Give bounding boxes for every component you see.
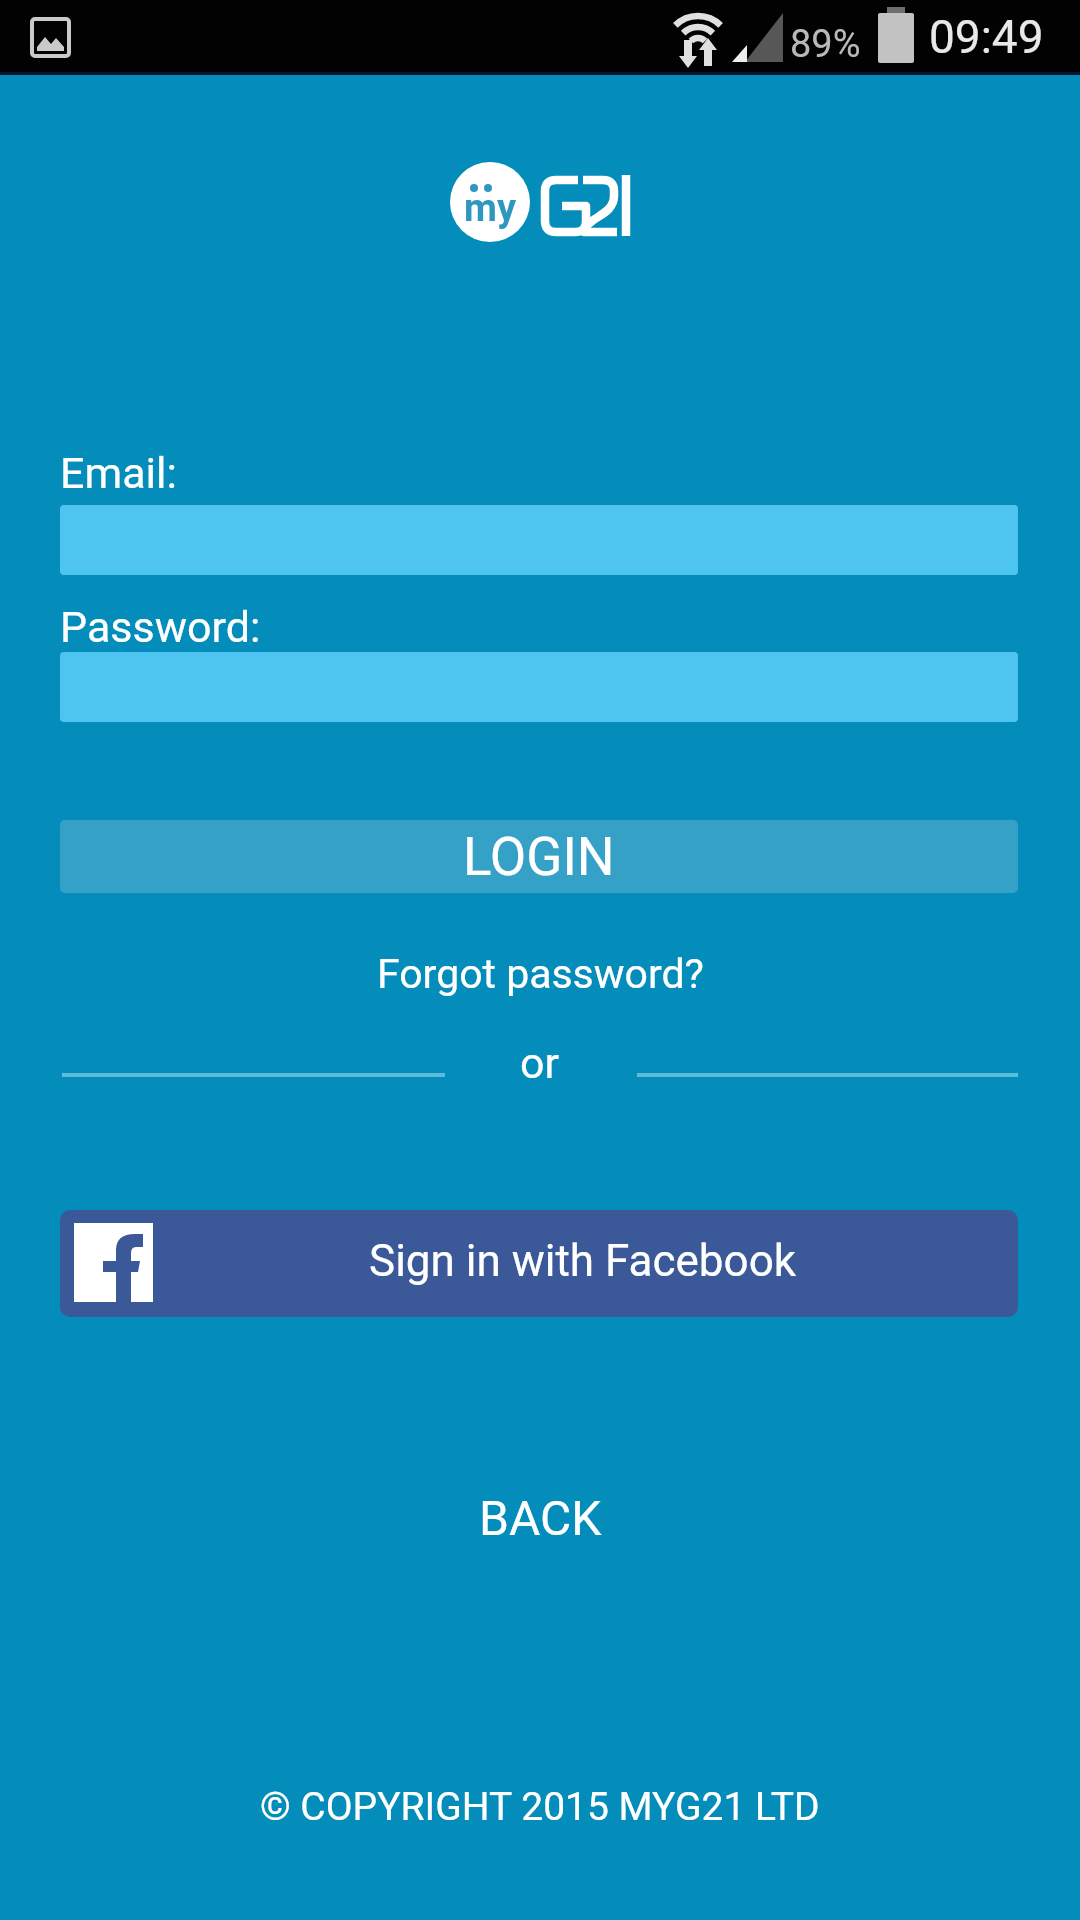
staticText: Email: <box>60 448 177 498</box>
button[interactable]: Forgot password? <box>377 950 704 998</box>
staticText: © COPYRIGHT 2015 MYG21 LTD <box>260 1784 820 1830</box>
button[interactable]: BACK <box>479 1490 602 1546</box>
staticText: Sign in with Facebook <box>369 1235 797 1287</box>
staticText: or <box>520 1038 560 1088</box>
button[interactable]: LOGIN <box>60 820 1018 893</box>
staticText: Password: <box>60 602 261 652</box>
button[interactable]: Sign in with Facebook <box>60 1210 1018 1317</box>
staticText: 89% <box>790 22 861 67</box>
staticText: LOGIN <box>463 826 615 888</box>
staticText: 09:49 <box>929 10 1044 64</box>
staticText: my <box>464 186 516 231</box>
